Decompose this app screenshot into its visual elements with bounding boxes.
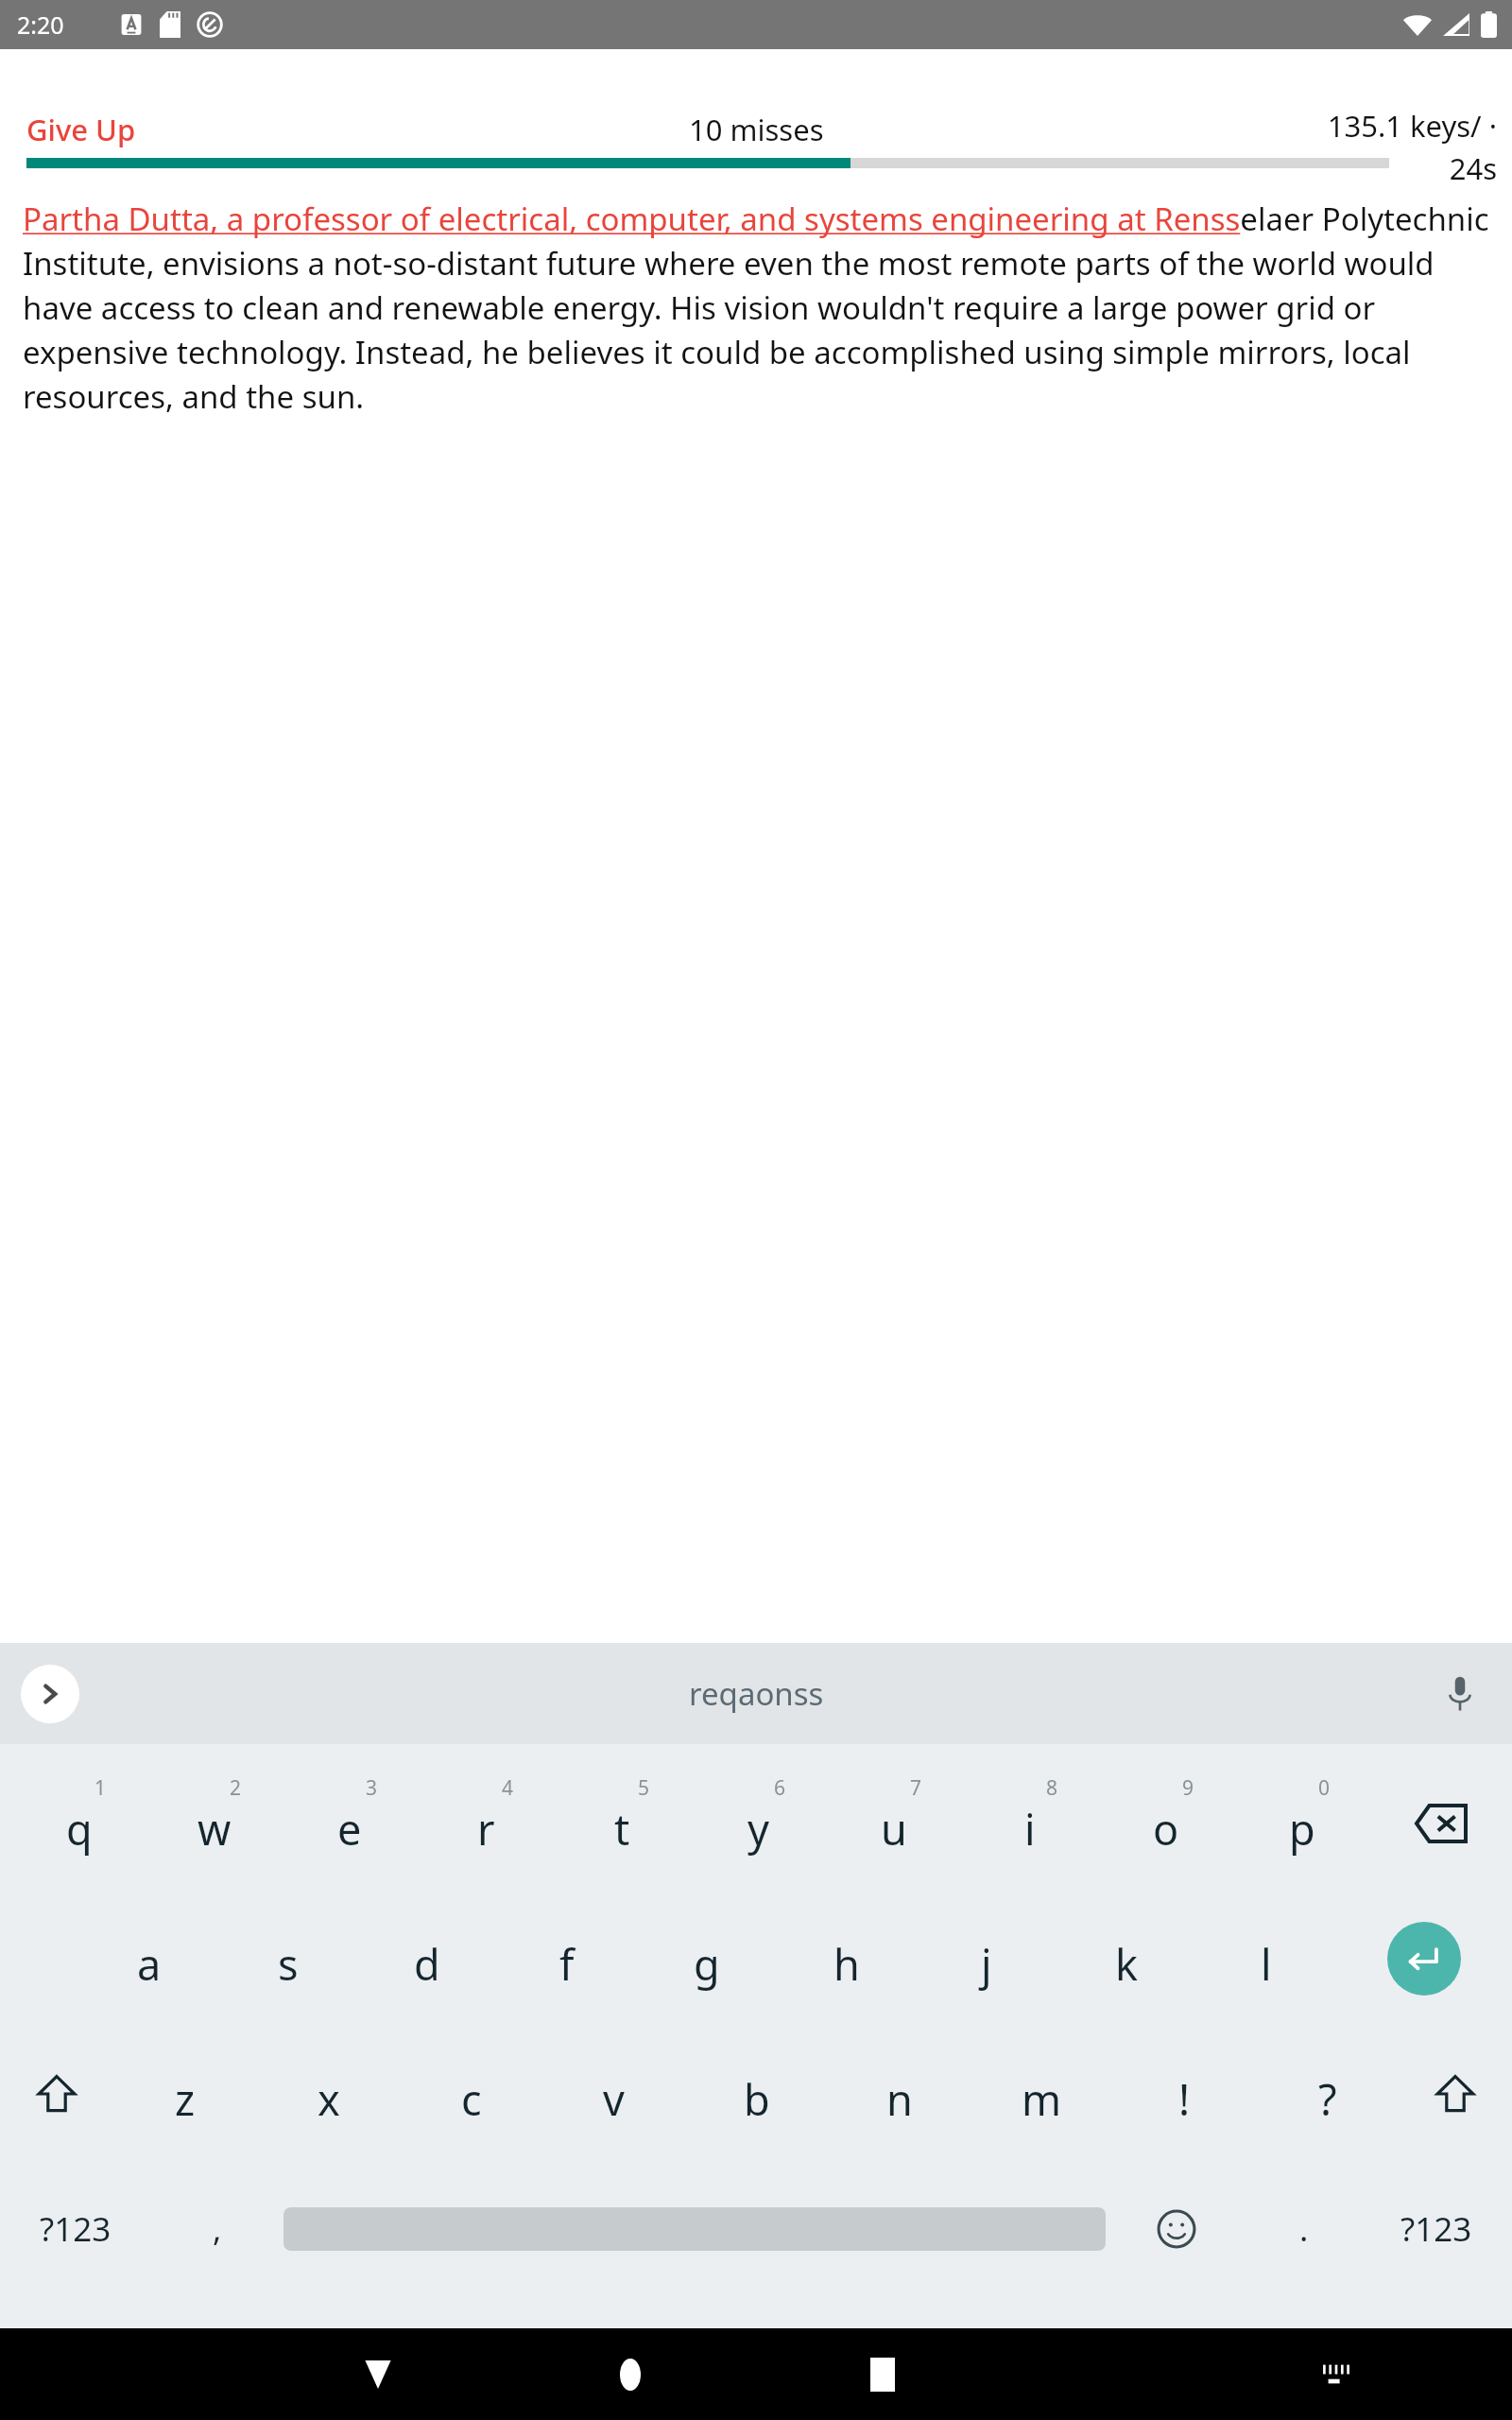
button[interactable]: reqaonss (657, 1661, 856, 1726)
button[interactable]: Emoji (1106, 2161, 1247, 2296)
button[interactable]: h (777, 1891, 917, 2026)
button[interactable]: f (497, 1891, 637, 2026)
staticText: q (66, 1800, 93, 1858)
staticText: z (175, 2070, 196, 2128)
staticText: f (559, 1935, 575, 1993)
button[interactable]: j (917, 1891, 1057, 2026)
button[interactable]: Shift (1399, 2026, 1512, 2161)
button[interactable]: Recents (756, 2328, 1008, 2420)
button[interactable]: Space (283, 2161, 1106, 2296)
button[interactable]: d (357, 1891, 497, 2026)
staticText: m (1022, 2070, 1062, 2128)
staticText: 9 (1182, 1774, 1194, 1802)
button[interactable]: ?123 (1361, 2161, 1512, 2296)
staticText: 0 (1318, 1774, 1331, 1802)
staticText: ! (1178, 2070, 1191, 2128)
staticText: c (461, 2070, 482, 2128)
button[interactable]: l (1196, 1891, 1336, 2026)
staticText: 7 (910, 1774, 922, 1802)
staticText: 3 (366, 1774, 378, 1802)
button[interactable]: s (218, 1891, 357, 2026)
button[interactable]: 1 (11, 1755, 146, 1891)
staticText: h (833, 1935, 860, 1993)
staticText: reqaonss (689, 1672, 824, 1715)
button[interactable]: 2 (146, 1755, 282, 1891)
staticText: , (213, 2206, 222, 2252)
staticText: Partha Dutta, a professor of electrical,… (23, 198, 1489, 418)
staticText: u (881, 1800, 907, 1858)
staticText: 2:20 (17, 9, 64, 41)
button[interactable]: Switch keyboard (1210, 2328, 1462, 2420)
staticText: 10 misses (689, 110, 824, 149)
button[interactable]: Give Up (9, 104, 153, 155)
staticText: l (1261, 1935, 1272, 1993)
button[interactable]: ? (1256, 2026, 1399, 2161)
button[interactable]: 4 (418, 1755, 554, 1891)
button[interactable]: Backspace (1370, 1755, 1512, 1891)
staticText: p (1289, 1800, 1315, 1858)
staticText: w (198, 1800, 232, 1858)
staticText: t (614, 1800, 630, 1858)
button[interactable]: Back (251, 2328, 504, 2420)
staticText: s (278, 1935, 299, 1993)
button[interactable]: 9 (1098, 1755, 1234, 1891)
staticText: j (981, 1935, 992, 1993)
button[interactable]: c (400, 2026, 542, 2161)
button[interactable]: ! (1113, 2026, 1256, 2161)
staticText: d (414, 1935, 440, 1993)
button[interactable]: 8 (962, 1755, 1098, 1891)
button[interactable]: z (113, 2026, 257, 2161)
button[interactable]: Home (504, 2328, 756, 2420)
button[interactable]: 5 (554, 1755, 690, 1891)
staticText: n (886, 2070, 913, 2128)
staticText: 5 (638, 1774, 650, 1802)
staticText: 135.1 keys/ · 24s (1308, 106, 1497, 184)
staticText: 1 (94, 1774, 107, 1802)
button[interactable]: Shift (0, 2026, 113, 2161)
staticText: x (318, 2070, 340, 2128)
staticText: ?123 (40, 2206, 112, 2252)
staticText: o (1153, 1800, 1179, 1858)
staticText: a (137, 1935, 162, 1993)
staticText: g (694, 1935, 720, 1993)
button[interactable]: 3 (282, 1755, 418, 1891)
button[interactable]: 7 (826, 1755, 962, 1891)
staticText: . (1299, 2206, 1309, 2252)
button[interactable]: Voice input (1433, 1667, 1487, 1721)
staticText: y (747, 1800, 769, 1858)
button[interactable]: b (685, 2026, 828, 2161)
button[interactable]: g (637, 1891, 777, 2026)
staticText: r (477, 1800, 495, 1858)
staticText: 4 (502, 1774, 514, 1802)
staticText: k (1115, 1935, 1139, 1993)
staticText: e (337, 1800, 362, 1858)
staticText: Give Up (26, 110, 136, 149)
button[interactable]: ?123 (0, 2161, 151, 2296)
staticText: ?123 (1400, 2206, 1472, 2252)
button[interactable]: Enter (1387, 1922, 1461, 1996)
button[interactable]: 0 (1234, 1755, 1370, 1891)
staticText: 8 (1046, 1774, 1058, 1802)
button[interactable]: . (1247, 2161, 1361, 2296)
button[interactable]: , (151, 2161, 283, 2296)
button[interactable]: k (1057, 1891, 1196, 2026)
staticText: 6 (774, 1774, 786, 1802)
staticText: i (1024, 1800, 1036, 1858)
staticText: ? (1318, 2070, 1337, 2128)
staticText: b (744, 2070, 770, 2128)
button[interactable]: a (79, 1891, 218, 2026)
staticText: 2 (230, 1774, 242, 1802)
button[interactable]: x (257, 2026, 400, 2161)
button[interactable]: m (971, 2026, 1113, 2161)
button[interactable]: v (542, 2026, 685, 2161)
button[interactable]: Expand suggestions (21, 1665, 79, 1723)
staticText: v (603, 2070, 625, 2128)
button[interactable]: 6 (690, 1755, 826, 1891)
button[interactable]: n (828, 2026, 971, 2161)
